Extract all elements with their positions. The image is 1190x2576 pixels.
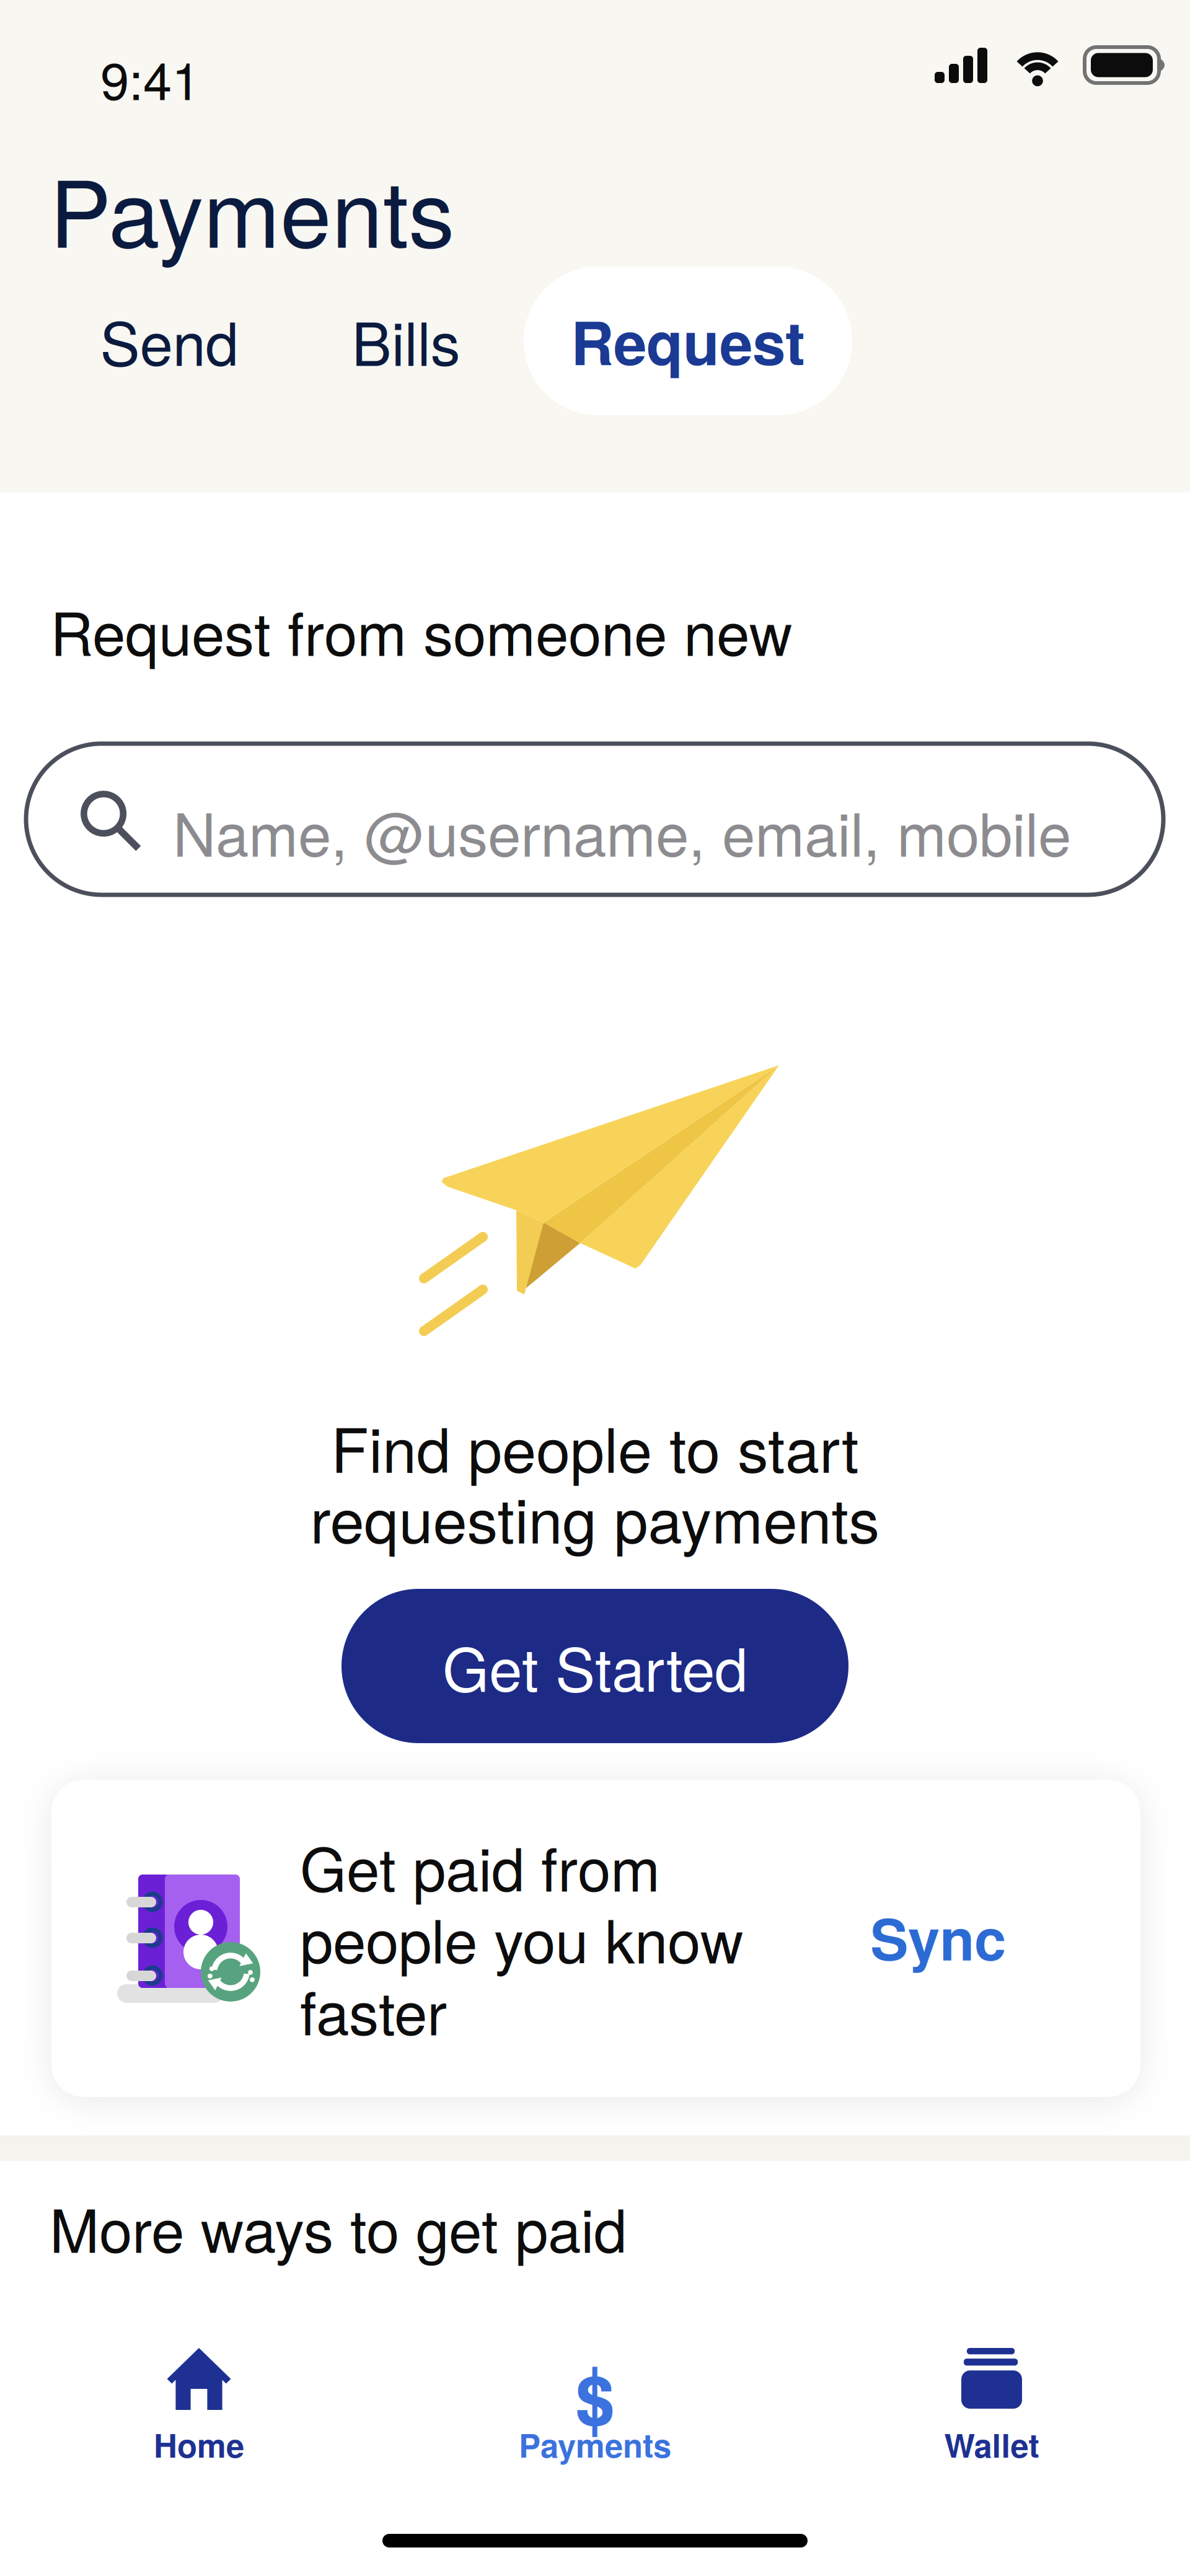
staticText: Get Started [443, 1623, 747, 1709]
button[interactable]: Name, @username, email, mobile [26, 744, 1163, 895]
staticText: Send [100, 298, 238, 383]
button[interactable]: Get Started [342, 1589, 848, 1743]
staticText: requesting payments [310, 1473, 880, 1561]
button[interactable]: Home [75, 2344, 323, 2499]
staticText: Home [154, 2421, 244, 2468]
staticText: Wallet [944, 2421, 1039, 2468]
staticText: Name, @username, email, mobile [173, 788, 1071, 874]
staticText: Bills [352, 298, 460, 383]
staticText: Request [571, 298, 805, 384]
staticText: 9:41 [100, 41, 200, 115]
button[interactable]: $ [471, 2344, 719, 2499]
staticText: faster [300, 1967, 447, 2052]
staticText: Get paid from [300, 1823, 660, 1908]
staticText: people you know [300, 1895, 743, 1980]
staticText: Request from someone new [50, 587, 792, 673]
staticText: Sync [870, 1896, 1006, 1978]
button[interactable]: Request [524, 266, 852, 415]
staticText: $ [574, 2339, 616, 2461]
button[interactable]: Wallet [868, 2344, 1116, 2499]
staticText: Payments [519, 2421, 671, 2468]
staticText: More ways to get paid [50, 2184, 627, 2270]
button[interactable]: Bills [334, 266, 478, 414]
staticText: Payments [50, 142, 454, 274]
button[interactable]: Get paid from [51, 1780, 1140, 2097]
button[interactable]: Send [92, 266, 247, 414]
staticText: Find people to start [331, 1402, 859, 1490]
